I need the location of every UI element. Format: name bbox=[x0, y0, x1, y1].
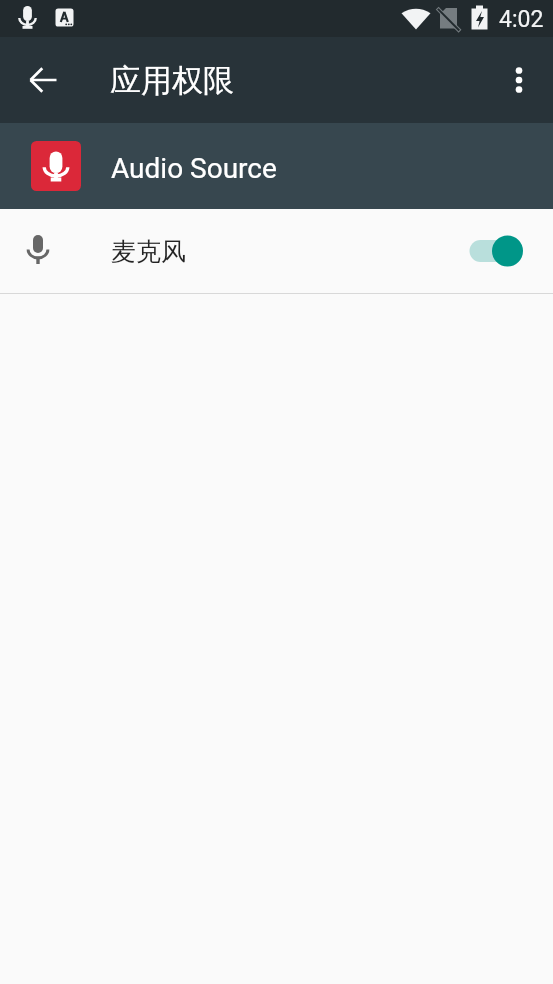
staticText: 应用权限 bbox=[110, 61, 234, 100]
staticText: Audio Source bbox=[111, 152, 277, 185]
button[interactable]: Back bbox=[19, 56, 67, 104]
staticText: 麦克风 bbox=[111, 236, 186, 267]
button[interactable]: Microphone permission bbox=[462, 221, 538, 281]
button[interactable]: More options bbox=[495, 56, 543, 104]
button[interactable]: 麦克风 bbox=[0, 209, 553, 293]
button[interactable]: Audio Source bbox=[0, 123, 553, 209]
staticText: 4:02 bbox=[499, 6, 544, 33]
